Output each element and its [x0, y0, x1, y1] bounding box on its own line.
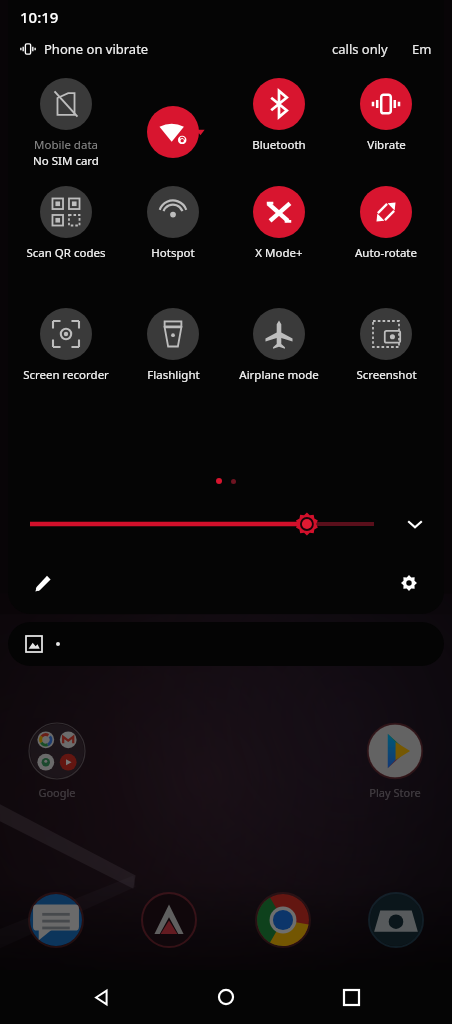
staticText: Auto-rotate [355, 245, 417, 261]
staticText: Google [38, 785, 76, 800]
button[interactable]: Play Store [360, 723, 430, 800]
button[interactable]: Chrome [255, 892, 311, 948]
staticText: Mobile data [34, 137, 98, 153]
button[interactable]: Google [22, 723, 92, 800]
button[interactable]: Recent apps [327, 973, 375, 1021]
button[interactable]: Phone on vibrate [20, 40, 149, 58]
button[interactable]: Scan QR codes [17, 186, 115, 261]
button[interactable]: calls only [332, 40, 388, 58]
button[interactable]: Hotspot [124, 186, 222, 261]
button[interactable]: Expand [396, 505, 434, 543]
button[interactable]: Screen recorder [17, 308, 115, 383]
staticText: X Mode+ [255, 245, 303, 261]
staticText: 10:19 [20, 7, 59, 27]
button[interactable]: Flashlight [124, 308, 222, 383]
button[interactable]: Bluetooth [230, 78, 328, 153]
staticText: Screen recorder [23, 367, 109, 383]
button[interactable]: Screenshot [337, 308, 435, 383]
staticText: Play Store [369, 785, 421, 800]
button[interactable]: Back [77, 973, 125, 1021]
button[interactable]: Messages [28, 892, 84, 948]
button[interactable]: Mobile data [17, 78, 115, 169]
staticText: No SIM card [33, 153, 99, 169]
button[interactable]: Airplane mode [230, 308, 328, 383]
button[interactable]: Brightness [30, 504, 382, 544]
button[interactable]: Em [412, 40, 432, 58]
button[interactable]: Vibrate [337, 78, 435, 153]
staticText: Phone on vibrate [44, 40, 149, 58]
staticText: Hotspot [151, 245, 195, 261]
button[interactable]: Auto-rotate [337, 186, 435, 261]
staticText: Bluetooth [252, 137, 306, 153]
button[interactable]: Camera [368, 892, 424, 948]
button[interactable]: whale_ft_caral_2 [124, 78, 222, 186]
staticText: Airplane mode [239, 367, 319, 383]
button[interactable]: Navigation app [141, 892, 197, 948]
staticText: Vibrate [367, 137, 406, 153]
button[interactable]: X Mode+ [230, 186, 328, 261]
staticText: Screenshot [356, 367, 417, 383]
button[interactable]: Home [202, 973, 250, 1021]
button[interactable]: Edit tiles [26, 566, 60, 600]
staticText: Flashlight [147, 367, 200, 383]
staticText: Scan QR codes [26, 245, 106, 261]
button[interactable] [8, 622, 444, 666]
button[interactable]: Settings [392, 566, 426, 600]
